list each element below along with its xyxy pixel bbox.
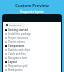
- staticText: Custom Preview: [15, 3, 49, 9]
- button[interactable]: Project structure: [5, 36, 61, 40]
- button[interactable]: Responsive grid: [5, 64, 61, 68]
- staticText: Search docs: [9, 24, 22, 27]
- button[interactable]: Buttons and chips: [5, 48, 61, 52]
- staticText: Layout: [8, 60, 17, 64]
- button[interactable]: Search docs: [5, 23, 25, 27]
- button[interactable]: Install the package: [5, 32, 61, 36]
- staticText: Navigation bars: [8, 56, 28, 60]
- button[interactable]: Theme tokens: [5, 40, 61, 44]
- staticText: Project structure: [8, 36, 29, 40]
- staticText: Buttons and chips: [8, 48, 30, 52]
- button[interactable]: Layout: [5, 60, 61, 64]
- button[interactable]: Cards and lists: [5, 52, 61, 56]
- staticText: Getting started: [8, 28, 28, 32]
- button[interactable]: Breakpoints: [5, 68, 61, 72]
- staticText: Responsive grid: [8, 64, 28, 68]
- button[interactable]: Components: [5, 44, 61, 48]
- button[interactable]: Getting started: [5, 28, 61, 32]
- staticText: Responsive layouts: [20, 10, 44, 14]
- staticText: Cards and lists: [8, 52, 26, 56]
- button[interactable]: Navigation bars: [5, 56, 61, 60]
- staticText: Breakpoints: [8, 68, 23, 72]
- staticText: Theme tokens: [8, 40, 26, 44]
- staticText: Install the package: [8, 32, 31, 36]
- staticText: Components: [8, 44, 25, 48]
